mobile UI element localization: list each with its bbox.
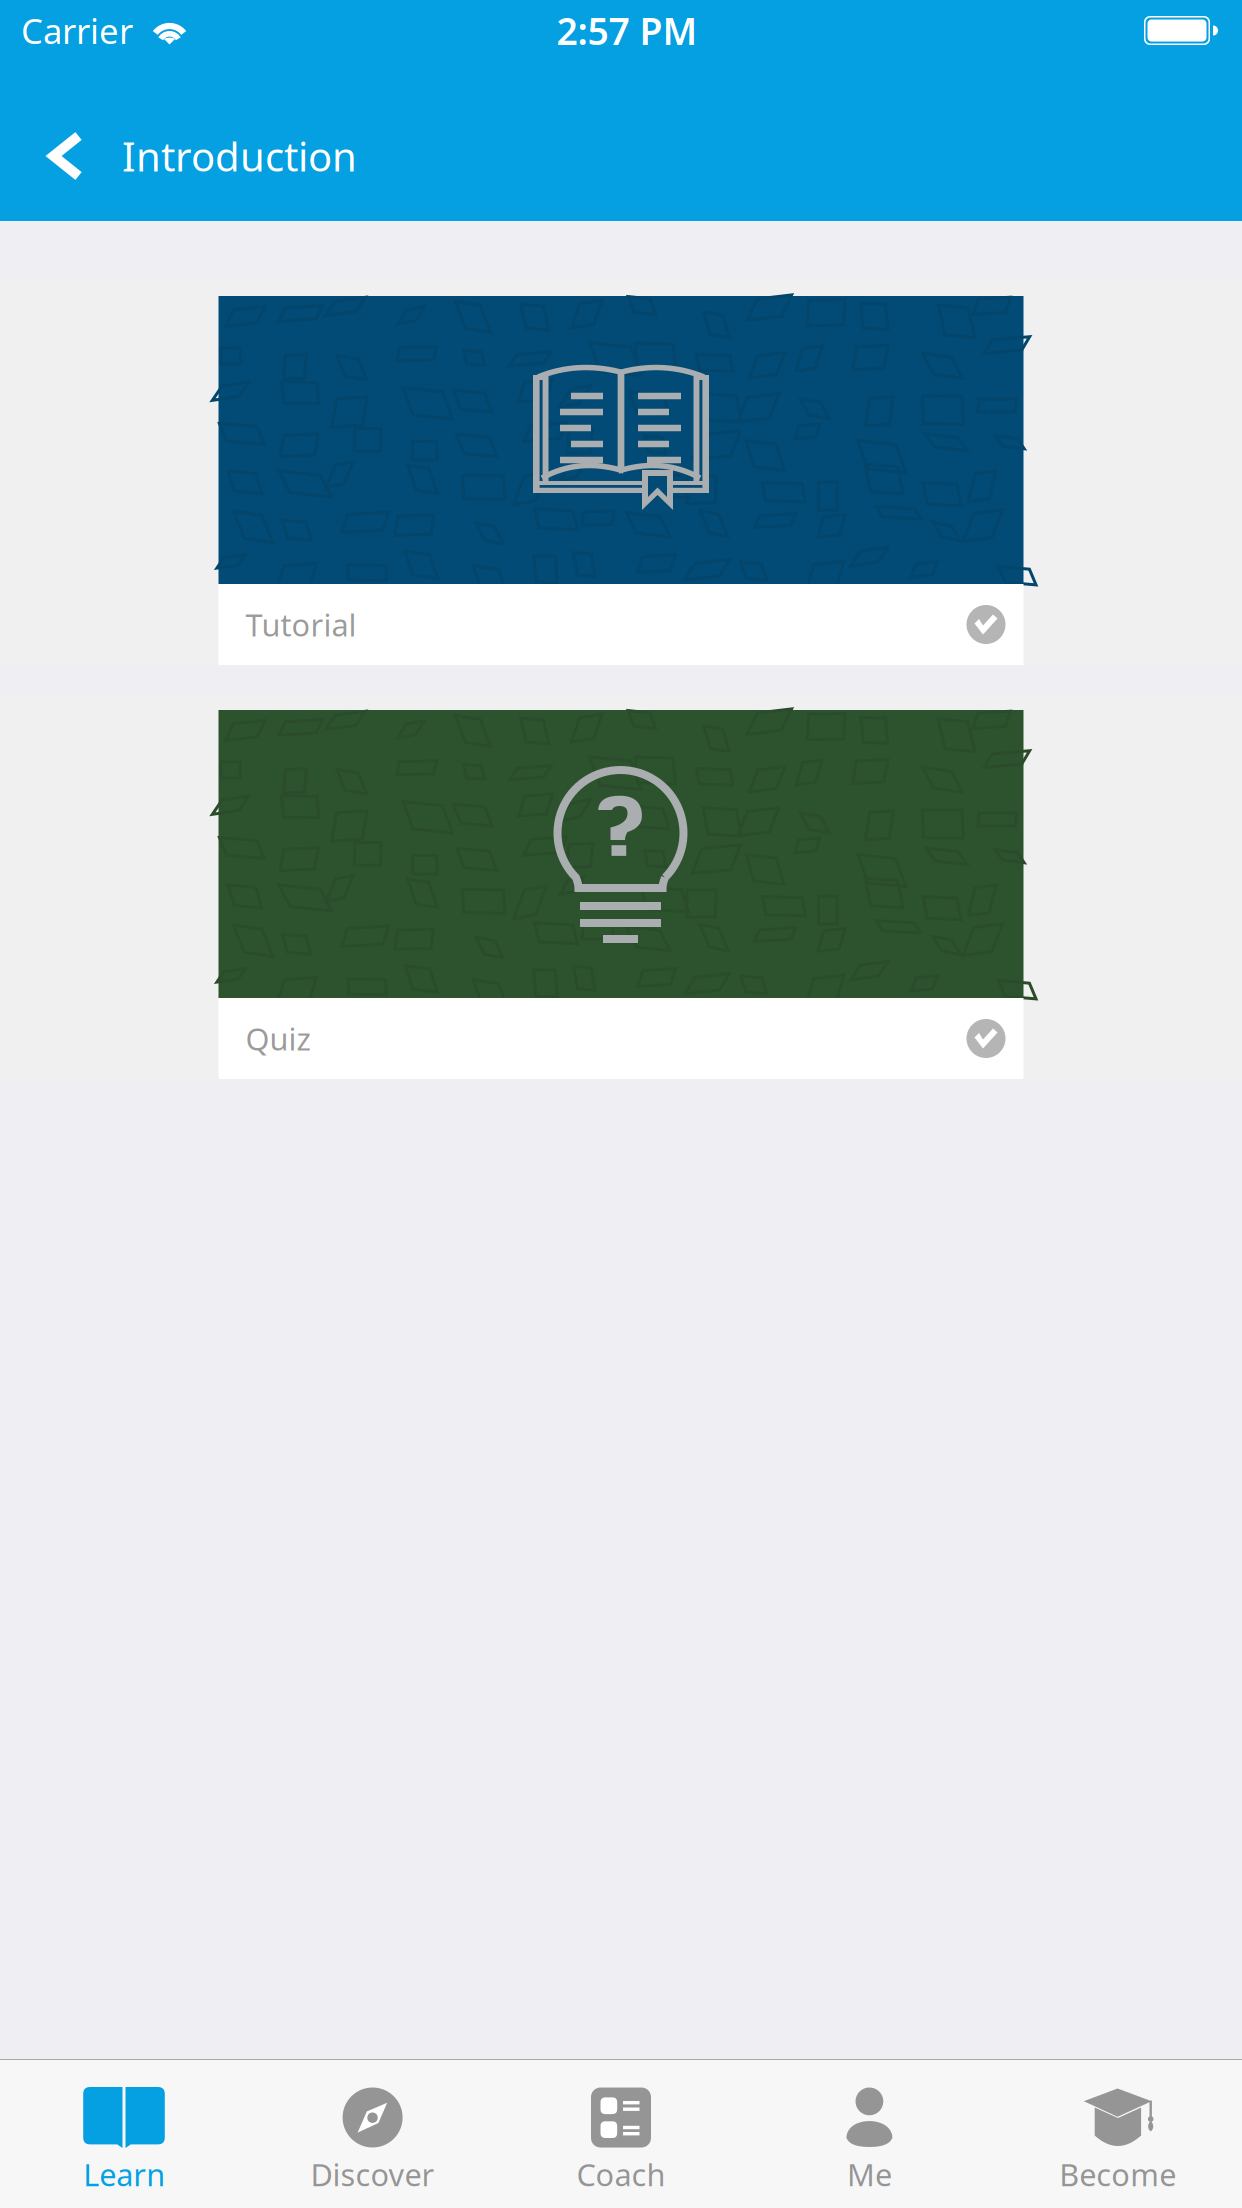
- button[interactable]: Become: [994, 2060, 1242, 2208]
- staticText: Carrier: [21, 7, 133, 53]
- button[interactable]: Me: [745, 2060, 994, 2208]
- staticText: Introduction: [122, 129, 357, 182]
- staticText: 2:57 PM: [556, 6, 697, 55]
- button[interactable]: Discover: [248, 2060, 497, 2208]
- button[interactable]: Learn: [0, 2060, 248, 2208]
- staticText: Become: [1059, 2154, 1176, 2195]
- button[interactable]: Introduction: [0, 122, 389, 190]
- staticText: Me: [847, 2154, 892, 2195]
- staticText: Coach: [576, 2154, 665, 2195]
- button[interactable]: Coach: [497, 2060, 745, 2208]
- staticText: Tutorial: [245, 604, 356, 645]
- button[interactable]: Tutorial: [218, 296, 1023, 665]
- staticText: Quiz: [245, 1018, 310, 1059]
- button[interactable]: Quiz: [218, 710, 1023, 1079]
- staticText: Discover: [311, 2154, 435, 2195]
- staticText: Learn: [83, 2154, 165, 2195]
